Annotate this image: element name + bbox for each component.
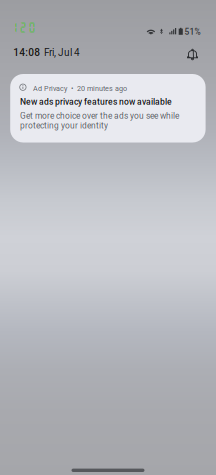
staticText: 120	[10, 21, 35, 33]
staticText: Get more choice over the ads you see whi…	[20, 111, 179, 131]
staticText: Fri, Jul 4	[44, 47, 80, 58]
staticText: 51%	[185, 27, 201, 37]
button[interactable]: Notifications	[187, 49, 198, 60]
staticText: 14:08	[13, 46, 40, 58]
button[interactable]: Ad Privacy • 20 minutes ago	[10, 74, 206, 142]
staticText: New ads privacy features now available	[20, 97, 172, 107]
staticText: Ad Privacy • 20 minutes ago	[33, 84, 127, 93]
